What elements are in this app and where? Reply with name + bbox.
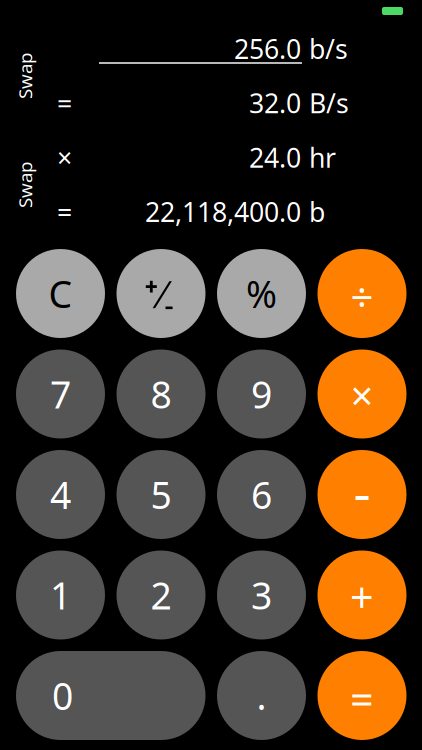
staticText: 4 bbox=[50, 470, 71, 519]
staticText: × bbox=[350, 368, 373, 421]
button[interactable]: 8 bbox=[116, 349, 205, 438]
staticText: hr bbox=[309, 140, 336, 175]
staticText: b bbox=[309, 194, 325, 229]
staticText: ÷ bbox=[350, 270, 373, 323]
staticText: = bbox=[57, 85, 72, 121]
button[interactable]: × bbox=[0, 130, 422, 184]
button[interactable]: = bbox=[0, 184, 422, 239]
button[interactable]: Swap units bbox=[13, 48, 37, 104]
staticText: . bbox=[256, 671, 266, 720]
button[interactable]: 5 bbox=[116, 450, 205, 539]
button[interactable]: . bbox=[217, 651, 306, 740]
staticText: 0 bbox=[52, 671, 73, 720]
button[interactable]: C bbox=[16, 249, 105, 338]
staticText: Swap bbox=[2, 64, 48, 88]
button[interactable]: 0 bbox=[16, 651, 205, 740]
staticText: 6 bbox=[251, 470, 272, 519]
staticText: B/s bbox=[309, 85, 349, 121]
button[interactable]: × bbox=[317, 349, 406, 438]
staticText: = bbox=[350, 671, 374, 726]
button[interactable]: Minus bbox=[317, 450, 406, 539]
staticText: 256.0 bbox=[234, 31, 301, 66]
staticText: 22,118,400.0 bbox=[145, 194, 301, 229]
button[interactable]: 1 bbox=[16, 550, 105, 639]
button[interactable]: = bbox=[0, 76, 422, 130]
staticText: = bbox=[57, 194, 72, 229]
button[interactable]: % bbox=[217, 249, 306, 338]
staticText: 3 bbox=[251, 570, 272, 620]
button[interactable]: Plus minus bbox=[116, 249, 205, 338]
button[interactable]: 7 bbox=[16, 349, 105, 438]
staticText: 24.0 bbox=[249, 140, 301, 175]
button[interactable]: Swap units bbox=[13, 157, 37, 213]
staticText: 7 bbox=[50, 369, 71, 419]
button[interactable]: 3 bbox=[217, 550, 306, 639]
button[interactable]: = bbox=[317, 651, 406, 740]
staticText: 5 bbox=[150, 470, 171, 519]
staticText: b/s bbox=[309, 31, 348, 66]
button[interactable]: + bbox=[317, 550, 406, 639]
staticText: C bbox=[48, 269, 72, 318]
button[interactable]: 2 bbox=[116, 550, 205, 639]
button[interactable]: 4 bbox=[16, 450, 105, 539]
staticText: Swap bbox=[2, 173, 48, 197]
button[interactable]: 9 bbox=[217, 349, 306, 438]
staticText: 32.0 bbox=[249, 85, 301, 121]
staticText: × bbox=[57, 140, 72, 175]
staticText: % bbox=[246, 269, 277, 318]
staticText: + bbox=[350, 570, 374, 624]
button[interactable]: ÷ bbox=[317, 249, 406, 338]
button[interactable] bbox=[0, 21, 422, 76]
button[interactable]: 6 bbox=[217, 450, 306, 539]
staticText: 2 bbox=[150, 570, 171, 620]
staticText: 9 bbox=[251, 369, 272, 419]
staticText: 1 bbox=[50, 570, 71, 620]
staticText: 8 bbox=[150, 369, 171, 419]
